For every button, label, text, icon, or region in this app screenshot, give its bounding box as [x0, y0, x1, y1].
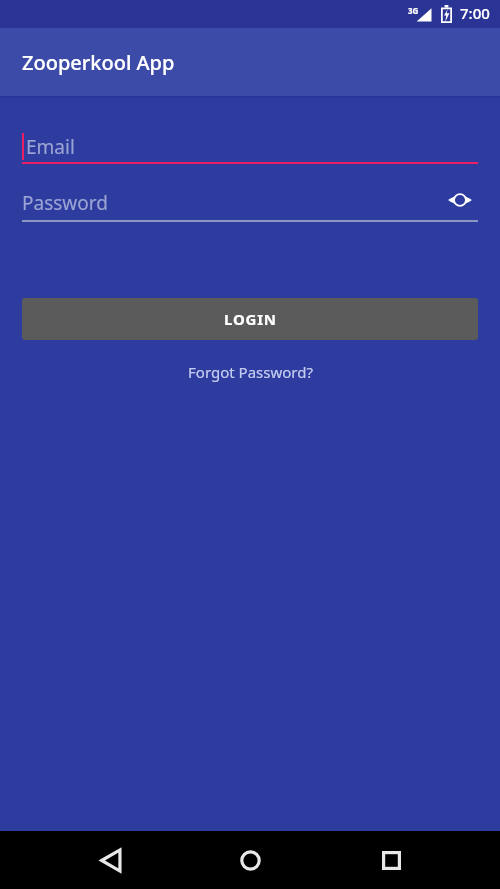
staticText: Forgot Password?: [188, 362, 313, 382]
button[interactable]: Recent apps: [360, 831, 422, 889]
staticText: 7:00: [460, 3, 490, 23]
staticText: Zooperkool App: [22, 49, 175, 76]
button[interactable]: Home: [219, 831, 281, 889]
staticText: 3G: [408, 5, 419, 16]
button[interactable]: LOGIN: [22, 298, 478, 340]
button[interactable]: Back: [79, 831, 141, 889]
button[interactable]: Show password: [442, 182, 478, 218]
staticText: LOGIN: [224, 309, 277, 329]
staticText: Email: [26, 134, 75, 160]
button[interactable]: Email: [22, 128, 478, 164]
staticText: Password: [22, 190, 108, 216]
button[interactable]: Forgot Password?: [174, 359, 327, 385]
button[interactable]: Password: [22, 186, 478, 222]
